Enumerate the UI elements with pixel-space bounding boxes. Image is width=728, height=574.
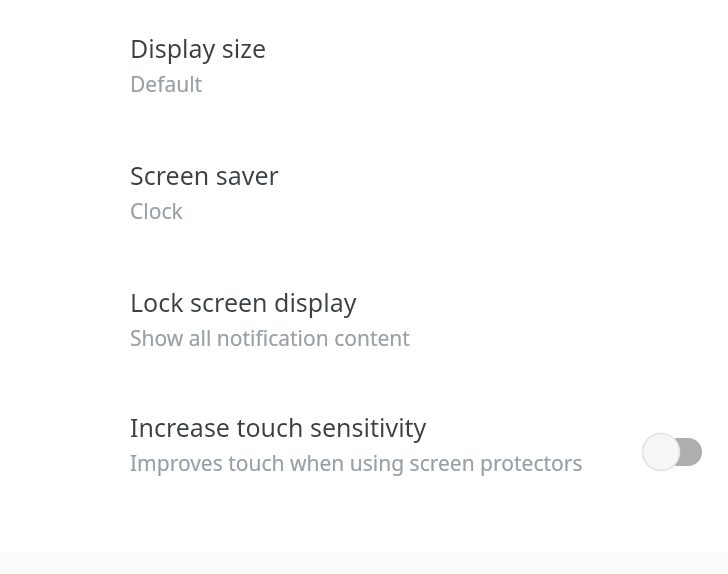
button[interactable]: Increase touch sensitivity bbox=[0, 410, 728, 478]
button[interactable]: Lock screen display bbox=[0, 285, 728, 353]
staticText: Lock screen display bbox=[130, 285, 357, 319]
staticText: Display size bbox=[130, 31, 267, 65]
staticText: Clock bbox=[130, 197, 183, 226]
staticText: Increase touch sensitivity bbox=[130, 410, 427, 444]
button[interactable]: Screen saver bbox=[0, 158, 728, 226]
staticText: Improves touch when using screen protect… bbox=[130, 449, 583, 478]
staticText: Default bbox=[130, 70, 203, 99]
staticText: Screen saver bbox=[130, 158, 279, 192]
staticText: Show all notification content bbox=[130, 324, 410, 353]
button[interactable]: Display size bbox=[0, 31, 728, 99]
button[interactable]: Increase touch sensitivity toggle, off bbox=[642, 430, 706, 474]
